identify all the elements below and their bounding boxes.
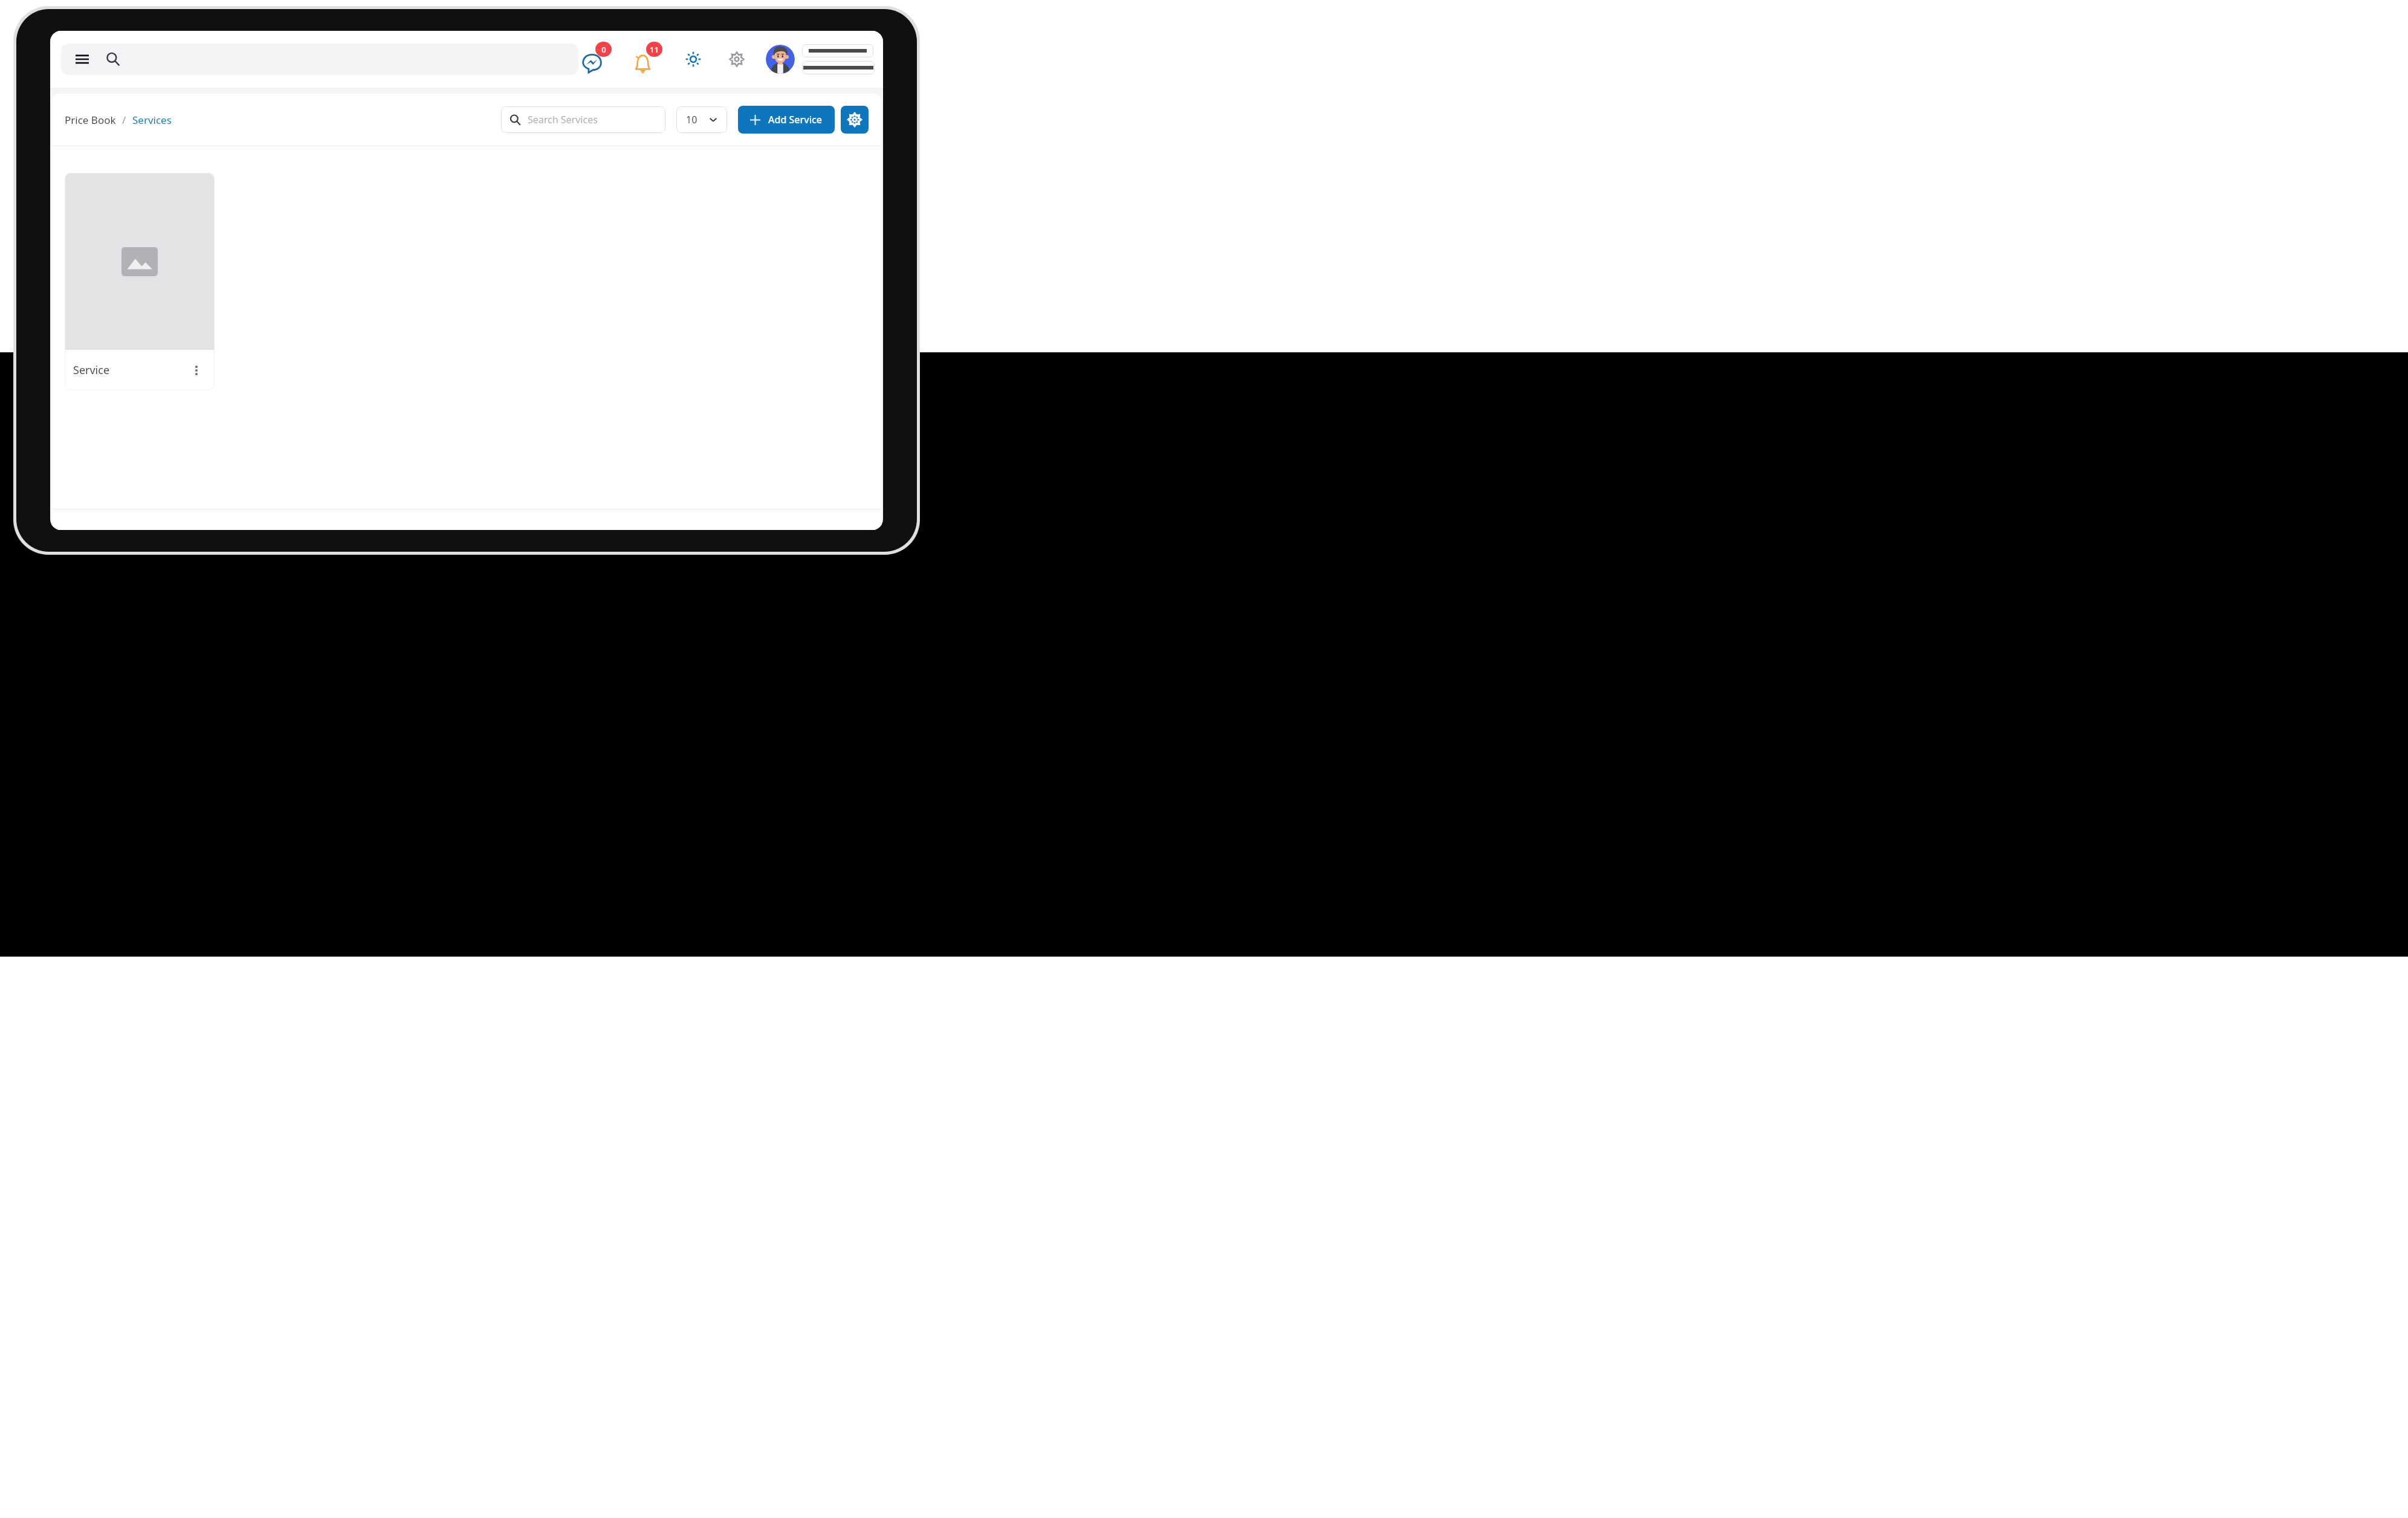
staticText: Add Service	[768, 113, 823, 126]
button[interactable]: Add Service	[738, 106, 835, 134]
staticText: /	[122, 113, 126, 127]
button[interactable]: Notifications	[629, 43, 662, 76]
button[interactable]: Service	[65, 173, 215, 390]
button[interactable]: More options	[187, 361, 206, 380]
button[interactable]: Price Book	[65, 113, 172, 127]
staticText: Service	[73, 363, 110, 378]
staticText: 11	[650, 44, 659, 55]
button[interactable]: Profile	[766, 45, 795, 74]
button[interactable]: Brightness	[680, 46, 707, 73]
button[interactable]: Settings	[723, 46, 750, 73]
staticText: 0	[601, 44, 606, 55]
staticText: Price Book	[65, 113, 116, 127]
staticText: 10	[686, 113, 697, 126]
button[interactable]: Messages	[578, 43, 611, 76]
staticText: Search Services	[528, 113, 598, 126]
button[interactable]: Table settings	[841, 106, 869, 134]
button[interactable]: Search Services	[501, 106, 665, 133]
button[interactable]	[61, 44, 578, 75]
staticText: Services	[132, 113, 172, 127]
button[interactable]: 10	[676, 106, 727, 133]
